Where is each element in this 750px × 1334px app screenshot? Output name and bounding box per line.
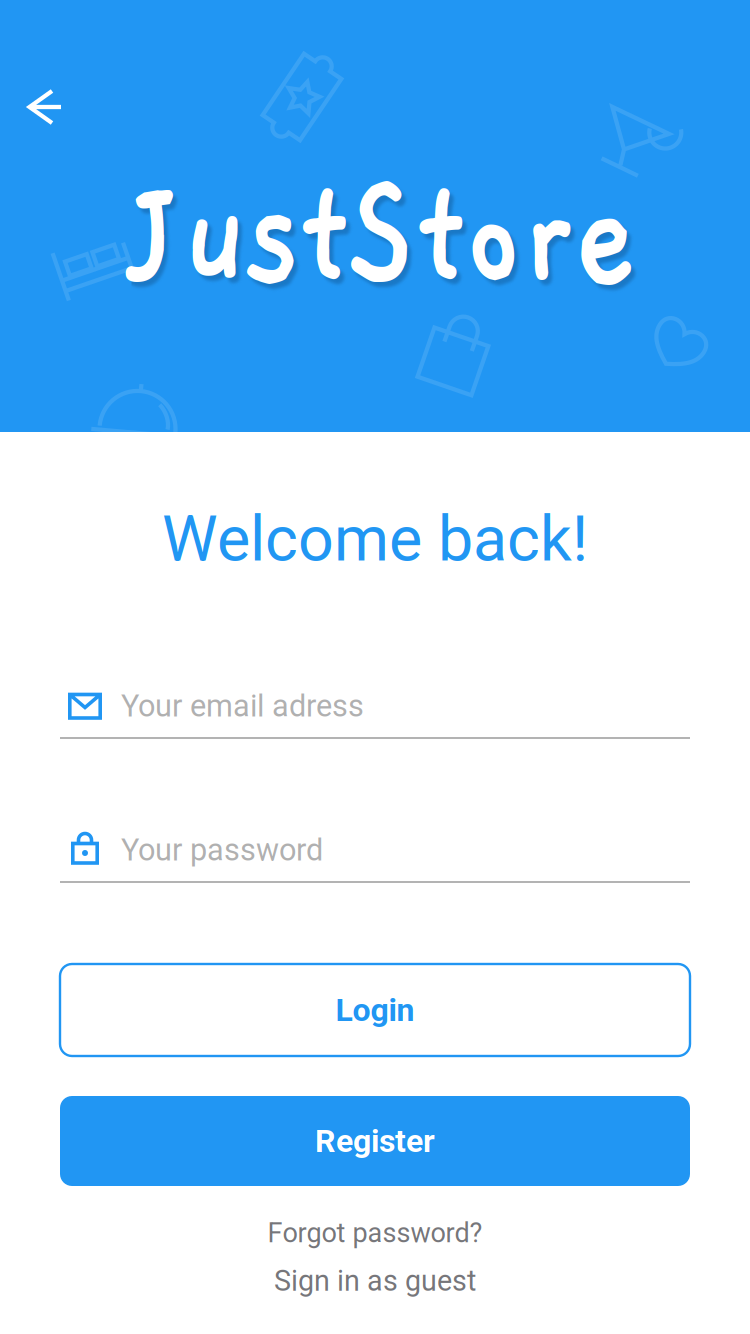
staticText: Login <box>335 991 414 1029</box>
staticText: Sign in as guest <box>274 1264 476 1298</box>
staticText: Your email adress <box>121 688 364 724</box>
button[interactable]: Sign in as guest <box>0 1258 750 1304</box>
button[interactable]: Forgot password? <box>0 1211 750 1255</box>
staticText: JustStore <box>73 153 694 319</box>
button[interactable]: Login <box>60 964 690 1056</box>
button[interactable]: Back <box>7 72 77 142</box>
staticText: Welcome back! <box>162 502 588 576</box>
staticText: Forgot password? <box>267 1217 482 1249</box>
button[interactable]: Register <box>60 1096 690 1186</box>
staticText: Register <box>315 1122 435 1160</box>
staticText: Your password <box>121 832 323 868</box>
